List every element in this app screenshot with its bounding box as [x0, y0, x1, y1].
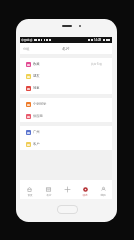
button[interactable]: Add: [58, 180, 76, 199]
staticText: 供应商: [33, 114, 43, 118]
staticText: 朋友: [33, 74, 40, 78]
button[interactable]: 动态: [76, 180, 94, 199]
staticText: 分组: [23, 47, 30, 51]
staticText: 客户: [33, 142, 40, 146]
button[interactable]: 小学同学: [20, 98, 112, 110]
staticText: 动态: [82, 193, 88, 196]
staticText: 共有 6 项: [91, 62, 102, 66]
button[interactable]: 朋友: [20, 70, 112, 82]
staticText: 名片: [62, 46, 70, 51]
staticText: 我的: [100, 193, 106, 196]
button[interactable]: 供应商: [20, 110, 112, 122]
button[interactable]: 名片: [39, 180, 58, 199]
staticText: 小学同学: [33, 102, 47, 106]
staticText: 收藏: [33, 62, 40, 66]
staticText: 广州: [33, 130, 40, 134]
button[interactable]: 我的: [94, 180, 112, 199]
button[interactable]: 分组: [20, 44, 33, 54]
staticText: 14:28: [94, 38, 102, 42]
button[interactable]: 收藏: [20, 58, 112, 70]
button[interactable]: 广州: [20, 126, 112, 138]
staticText: 中国移动: [21, 38, 33, 42]
button[interactable]: 首页: [20, 180, 39, 199]
button[interactable]: 客户: [20, 138, 112, 150]
staticText: 同事: [33, 86, 40, 90]
staticText: 首页: [27, 193, 33, 196]
staticText: 名片: [46, 193, 52, 196]
button[interactable]: 同事: [20, 82, 112, 94]
